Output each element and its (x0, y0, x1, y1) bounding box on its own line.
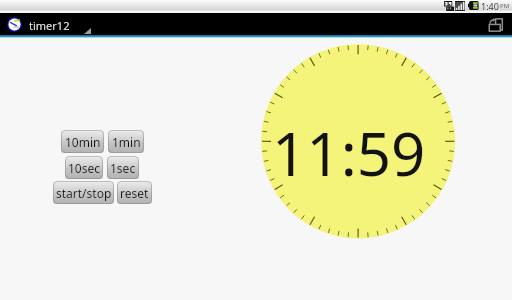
staticText: timer12 (29, 18, 70, 33)
button[interactable]: start/stop (53, 181, 114, 204)
staticText: 1sec (110, 160, 136, 176)
staticText: start/stop (56, 185, 112, 201)
staticText: 1:40 (481, 0, 499, 12)
button[interactable]: 1sec (107, 156, 139, 179)
staticText: 10min (65, 134, 101, 150)
staticText: 11:59 (272, 112, 426, 194)
button[interactable]: More options (79, 24, 96, 38)
button[interactable]: Screen rotation (487, 16, 504, 33)
button[interactable]: reset (117, 181, 152, 204)
button[interactable]: 10min (61, 130, 104, 153)
staticText: PM (500, 2, 510, 10)
staticText: 1min (112, 134, 141, 150)
staticText: reset (120, 185, 149, 201)
staticText: 10sec (68, 160, 101, 176)
button[interactable]: 1min (108, 130, 144, 153)
button[interactable]: 10sec (65, 156, 103, 179)
